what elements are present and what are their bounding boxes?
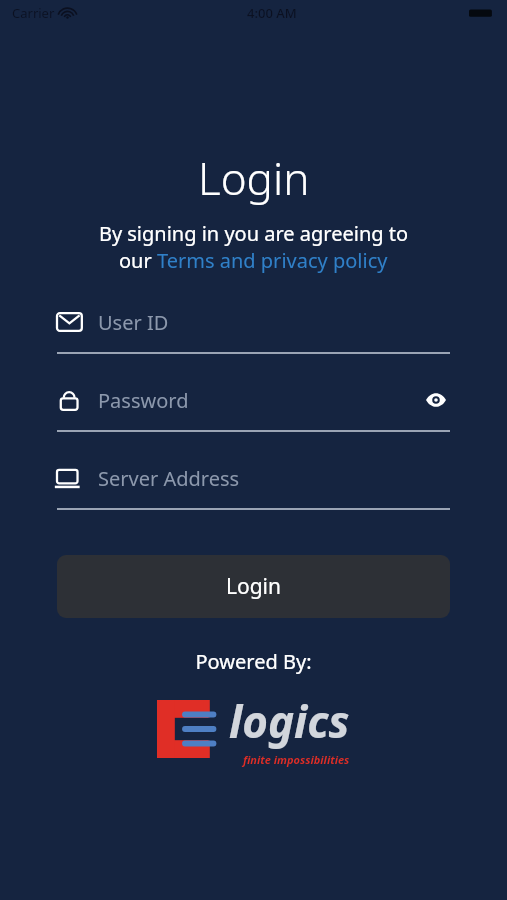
button[interactable]: User ID — [57, 306, 450, 354]
button[interactable]: Login — [57, 555, 450, 618]
staticText: User ID — [98, 309, 450, 336]
staticText: 4:00 AM — [247, 4, 297, 22]
staticText: Login — [226, 572, 282, 601]
button[interactable]: Server Address — [57, 462, 450, 510]
button[interactable]: Show password — [422, 386, 450, 414]
staticText: our — [119, 247, 157, 274]
staticText: By signing in you are agreeing to — [57, 220, 450, 247]
staticText: Password — [98, 387, 422, 414]
staticText: Login — [198, 148, 310, 208]
staticText: Terms and privacy policy — [157, 247, 388, 274]
staticText: Server Address — [98, 465, 450, 492]
staticText: logics — [229, 691, 350, 751]
staticText: Powered By: — [57, 648, 450, 675]
button[interactable]: Terms and privacy policy — [157, 247, 388, 274]
staticText: Carrier — [12, 4, 55, 22]
button[interactable]: Password — [57, 384, 450, 432]
staticText: finite impossibilities — [243, 752, 350, 767]
